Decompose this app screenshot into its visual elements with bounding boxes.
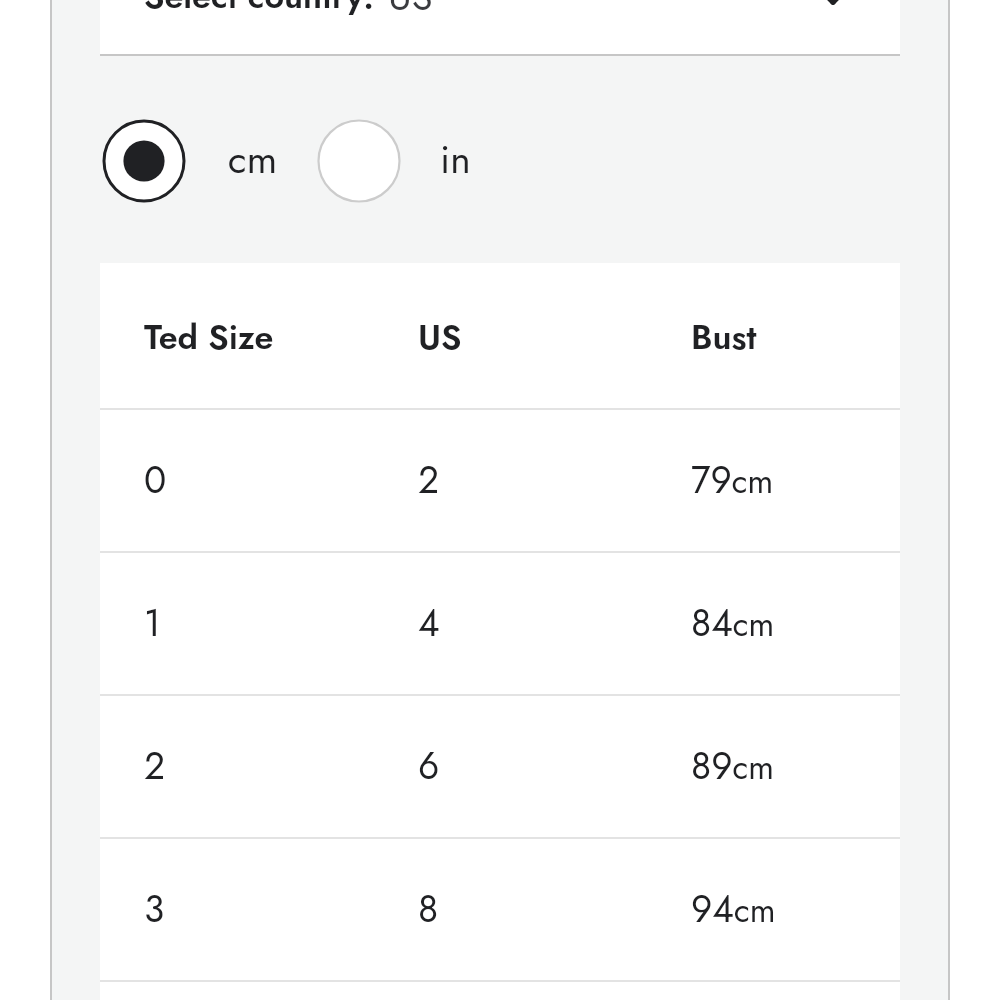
button[interactable]: cm	[102, 119, 282, 203]
staticText: US	[388, 0, 433, 24]
staticText: 4	[418, 596, 440, 649]
other: Select country	[813, 0, 853, 22]
button[interactable]: Ted size 0, US 2, bust 79cm	[100, 408, 900, 551]
staticText: cm	[228, 131, 278, 187]
staticText: 1	[144, 596, 161, 649]
staticText: Ted Size	[144, 313, 274, 362]
button[interactable]: Ted size 1, US 4, bust 84cm	[100, 551, 900, 694]
button[interactable]: Ted size 2, US 6, bust 89cm	[100, 694, 900, 837]
staticText: 3	[144, 882, 165, 935]
staticText: 0	[144, 453, 167, 506]
staticText: 94cm	[691, 882, 776, 935]
staticText: 89cm	[691, 739, 775, 792]
staticText: 84cm	[691, 596, 775, 649]
staticText: 79cm	[691, 453, 774, 506]
staticText: Select country:	[144, 0, 374, 21]
button[interactable]: Ted size 3, US 8, bust 94cm	[100, 837, 900, 980]
staticText: Bust	[691, 313, 757, 362]
staticText: 8	[418, 882, 439, 935]
staticText: 2	[418, 453, 440, 506]
staticText: US	[418, 313, 462, 362]
button[interactable]: Select country:	[100, 0, 900, 55]
staticText: 6	[418, 739, 440, 792]
button[interactable]: in	[317, 119, 487, 203]
staticText: in	[440, 131, 471, 187]
staticText: 2	[144, 739, 166, 792]
